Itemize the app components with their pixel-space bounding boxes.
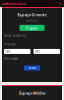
button[interactable]: Enviar (24, 65, 40, 70)
button[interactable]: Copiar (19, 25, 44, 31)
staticText: Nome completo (4, 34, 26, 37)
staticText: webmotors (2, 1, 26, 6)
staticText: Observação (4, 57, 18, 60)
staticText: Enviar (28, 66, 35, 70)
staticText: Texto (34, 50, 40, 53)
staticText: subtítulo (25, 19, 38, 23)
button[interactable]: Texto (33, 49, 60, 54)
staticText: Texto (5, 50, 11, 53)
button[interactable]: Texto (4, 49, 30, 54)
staticText: Espaço Grande (17, 12, 46, 17)
staticText: Copiar (26, 25, 38, 30)
staticText: Descrição (4, 42, 16, 46)
button[interactable]: Menu (58, 1, 62, 5)
staticText: Espaço Médio (19, 90, 45, 96)
